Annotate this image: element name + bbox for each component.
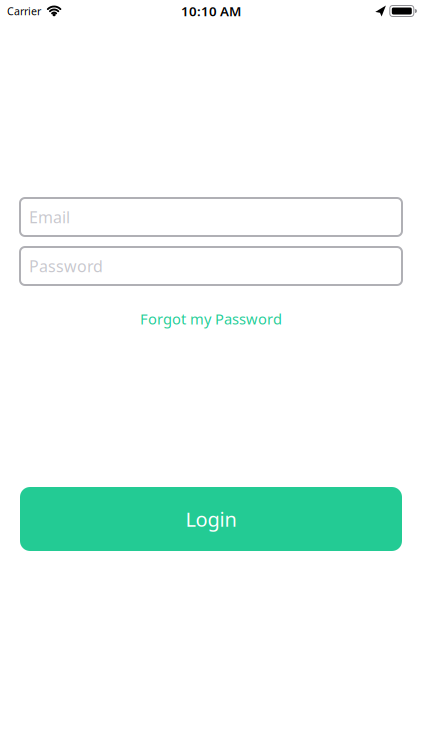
staticText: Login (185, 506, 236, 532)
staticText: Forgot my Password (140, 309, 282, 328)
button[interactable]: Password (20, 247, 402, 285)
button[interactable]: Email (20, 198, 402, 236)
staticText: Carrier (7, 4, 41, 18)
button[interactable]: Login (20, 487, 402, 551)
button[interactable]: Forgot my Password (140, 309, 282, 328)
staticText: 10:10 AM (181, 2, 241, 20)
staticText: Password (29, 255, 103, 277)
staticText: Email (29, 206, 70, 228)
